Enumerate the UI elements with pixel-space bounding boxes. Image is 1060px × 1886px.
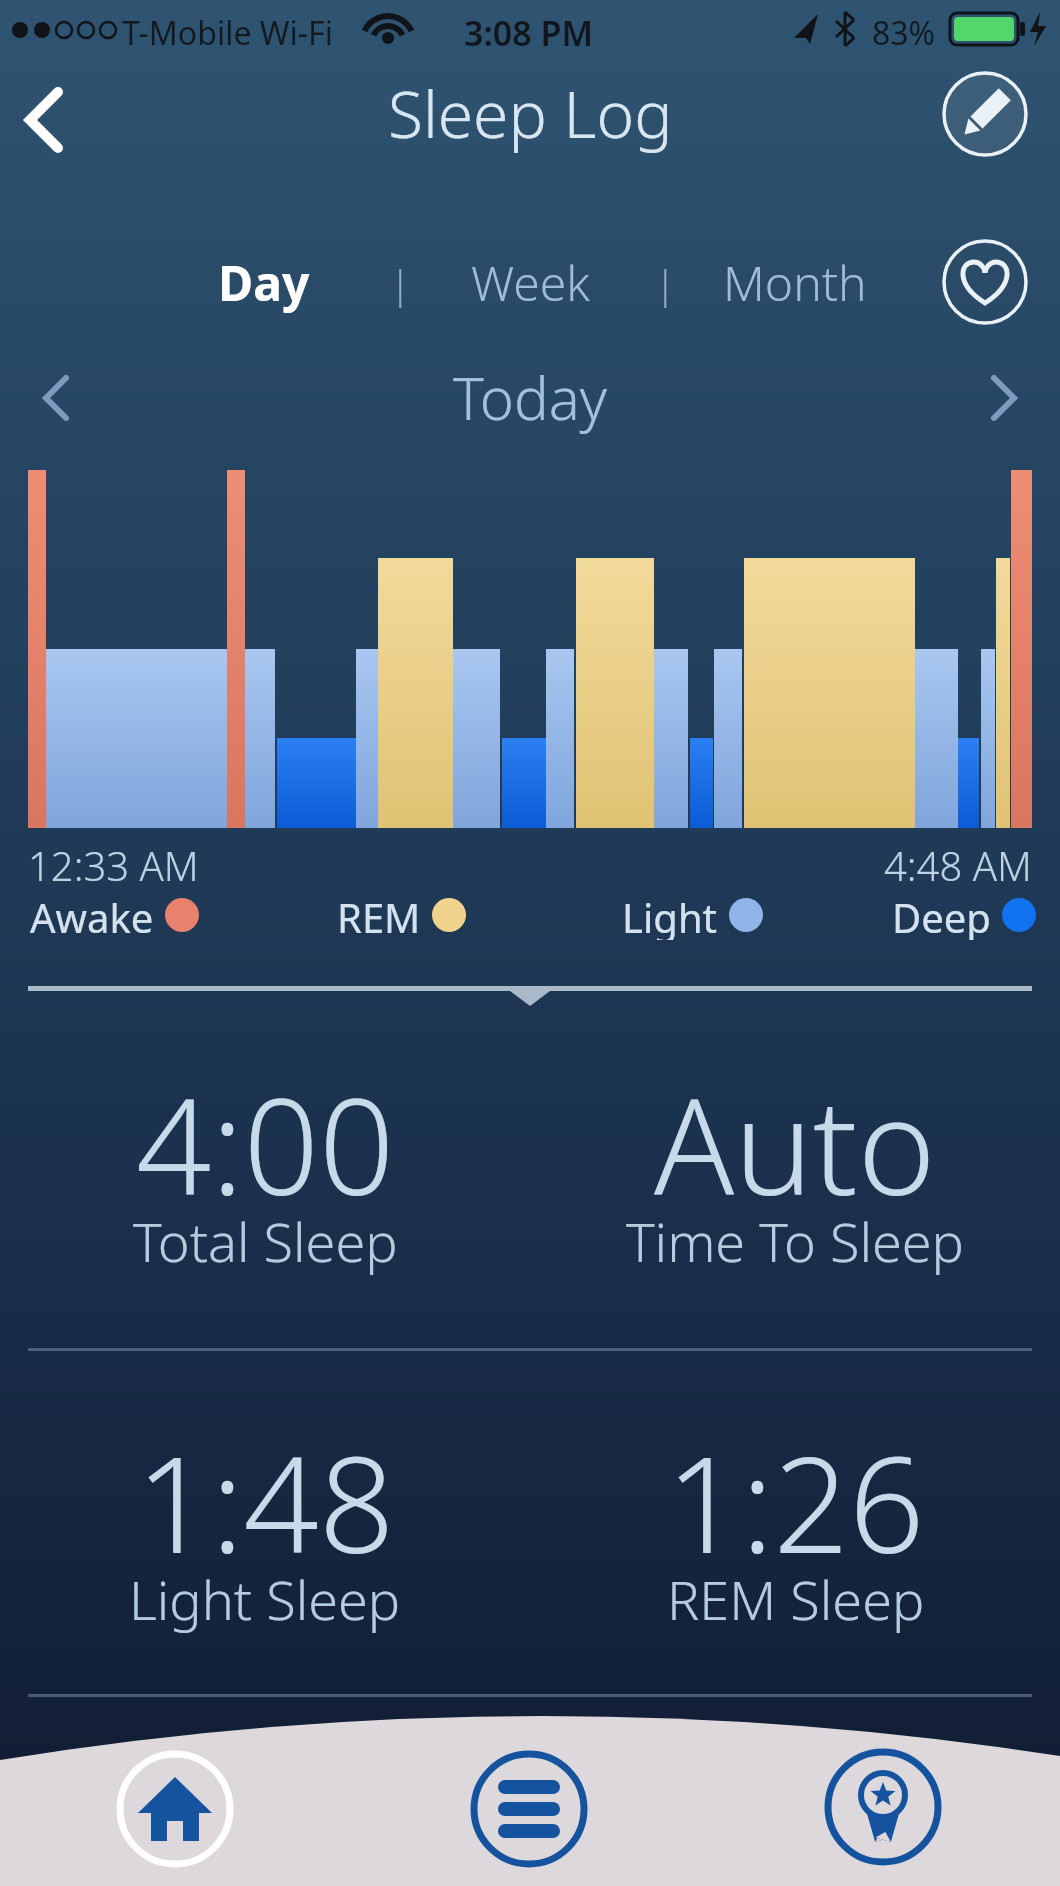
staticText: Time To Sleep	[626, 1204, 964, 1278]
staticText: 3:08 PM	[464, 10, 594, 56]
staticText: Auto	[654, 1054, 936, 1234]
staticText: Day	[218, 250, 310, 314]
staticText: 4:00	[136, 1054, 395, 1234]
staticText: Today	[453, 358, 607, 437]
staticText: 1:48	[136, 1412, 395, 1592]
staticText: T-Mobile Wi-Fi	[122, 11, 333, 55]
button[interactable]: Month	[695, 250, 895, 314]
staticText: 12:33 AM	[28, 838, 199, 892]
button[interactable]	[10, 84, 82, 156]
staticText: Awake	[30, 890, 154, 940]
staticText: Month	[723, 250, 867, 314]
staticText: Light	[622, 890, 718, 940]
staticText: Deep	[892, 890, 991, 940]
button[interactable]	[942, 71, 1028, 157]
button[interactable]	[942, 239, 1028, 325]
staticText: Week	[471, 250, 590, 314]
button[interactable]: Day	[164, 250, 364, 314]
button[interactable]	[823, 1747, 943, 1867]
staticText: 4:48 AM	[884, 838, 1032, 892]
staticText: Total Sleep	[133, 1204, 398, 1278]
button[interactable]	[115, 1749, 235, 1869]
staticText: |	[390, 258, 404, 308]
button[interactable]: Week	[430, 250, 630, 314]
button[interactable]	[469, 1749, 589, 1869]
staticText: |	[655, 258, 669, 308]
staticText: REM	[337, 890, 421, 940]
staticText: REM Sleep	[667, 1562, 925, 1636]
staticText: Light Sleep	[129, 1562, 401, 1636]
staticText: 83%	[872, 11, 936, 55]
staticText: Sleep Log	[388, 70, 673, 157]
staticText: 1:26	[666, 1412, 925, 1592]
